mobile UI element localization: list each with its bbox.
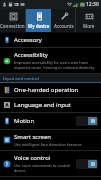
staticText: Use intelligent face detection features <box>14 142 82 147</box>
staticText: Voice control <box>14 154 51 162</box>
staticText: Improves accessibility for users who hav… <box>14 60 98 70</box>
staticText: Smart screen <box>14 133 52 141</box>
staticText: Motion <box>14 117 35 125</box>
staticText: Accessibility <box>14 51 48 59</box>
staticText: Language and input <box>14 101 71 109</box>
staticText: 12:36 <box>86 1 99 8</box>
button[interactable]: Accessory <box>0 33 101 48</box>
button[interactable]: Toggle <box>76 116 98 126</box>
button[interactable]: Accounts <box>51 9 76 32</box>
button[interactable]: My device <box>26 9 51 32</box>
staticText: Use voice commands to control device <box>14 163 74 173</box>
button[interactable]: One-handed operation <box>0 83 101 98</box>
staticText: My device <box>28 23 50 29</box>
staticText: Accounts <box>54 23 74 29</box>
button[interactable]: Smart screen <box>0 130 101 151</box>
staticText: More <box>83 23 95 29</box>
button[interactable]: Motion <box>0 113 101 130</box>
button[interactable]: Toggle <box>76 159 98 169</box>
button[interactable]: Language and input <box>0 98 101 113</box>
staticText: One-handed operation <box>14 86 79 94</box>
staticText: Input and control <box>3 75 39 81</box>
button[interactable]: Voice control <box>0 151 101 177</box>
button[interactable]: Connections <box>0 9 26 32</box>
staticText: Connections <box>0 23 26 29</box>
button[interactable]: More <box>76 9 101 32</box>
staticText: Accessory <box>14 36 42 44</box>
button[interactable]: Accessibility <box>0 48 101 74</box>
